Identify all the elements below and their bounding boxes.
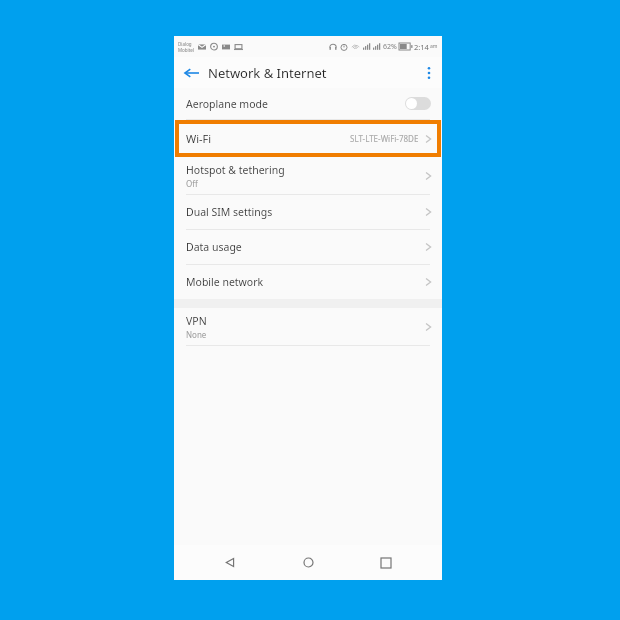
staticText: Mobitel <box>178 47 195 53</box>
staticText: Network & Internet <box>208 64 327 82</box>
button[interactable]: Hotspot & tethering <box>174 157 442 194</box>
button[interactable]: Aeroplane mode <box>174 88 442 119</box>
staticText: 2:14 <box>414 42 429 52</box>
staticText: SLT-LTE-WiFi-78DE <box>350 133 419 144</box>
button[interactable]: Dual SIM settings <box>174 195 442 229</box>
staticText: None <box>186 329 207 340</box>
button[interactable]: Mobile network <box>174 265 442 299</box>
button[interactable]: Data usage <box>174 230 442 264</box>
staticText: am <box>430 43 438 50</box>
staticText: Off <box>186 178 198 189</box>
staticText: 62% <box>383 42 397 52</box>
button[interactable]: Back <box>208 545 252 580</box>
button[interactable]: Back <box>174 57 208 88</box>
staticText: Wi-Fi <box>186 131 212 146</box>
staticText: Dual SIM settings <box>186 205 273 219</box>
button[interactable]: More options <box>416 57 442 88</box>
staticText: Hotspot & tethering <box>186 163 285 177</box>
button[interactable]: Home <box>286 545 330 580</box>
button[interactable]: VPN <box>174 308 442 345</box>
staticText: Data usage <box>186 240 242 254</box>
staticText: VPN <box>186 314 207 328</box>
staticText: Dialog <box>178 41 192 47</box>
button[interactable]: Recent apps <box>364 545 408 580</box>
button[interactable]: Wi-Fi <box>174 120 442 157</box>
staticText: Aeroplane mode <box>186 97 268 111</box>
staticText: Mobile network <box>186 275 264 289</box>
